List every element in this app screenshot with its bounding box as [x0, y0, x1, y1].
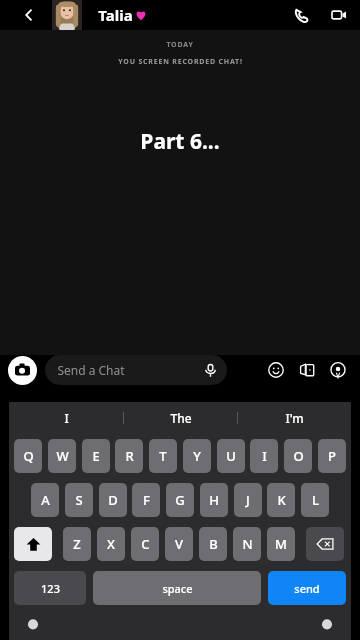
button[interactable]: P	[318, 439, 346, 473]
staticText: D	[108, 491, 118, 509]
button[interactable]: 123	[14, 571, 86, 605]
staticText: U	[226, 447, 236, 465]
button[interactable]: I	[9, 402, 123, 434]
button[interactable]: X	[97, 527, 125, 561]
staticText: K	[277, 491, 286, 509]
button[interactable]: R	[115, 439, 143, 473]
staticText: Q	[23, 447, 34, 465]
button[interactable]: Back	[18, 4, 40, 26]
button[interactable]: Shift	[14, 527, 52, 561]
staticText: Z	[73, 535, 81, 553]
button[interactable]: space	[93, 571, 261, 605]
button[interactable]: Send a Chat	[45, 355, 227, 385]
button[interactable]: Call	[288, 2, 314, 28]
staticText: I	[64, 410, 69, 426]
staticText: T	[159, 447, 167, 465]
staticText: I	[262, 447, 267, 465]
staticText: Send a Chat	[57, 362, 125, 378]
staticText: P	[328, 447, 336, 465]
button[interactable]: F	[132, 483, 160, 517]
button[interactable]: Camera	[8, 356, 37, 385]
staticText: send	[294, 581, 320, 596]
button[interactable]: send	[268, 571, 346, 605]
staticText: G	[175, 491, 185, 509]
button[interactable]: H	[200, 483, 228, 517]
staticText: B	[209, 535, 218, 553]
staticText: Part 6...	[140, 127, 220, 156]
staticText: F	[143, 491, 150, 509]
button[interactable]: G	[166, 483, 194, 517]
staticText: R	[125, 447, 134, 465]
staticText: I'm	[285, 410, 304, 426]
button[interactable]: I'm	[238, 402, 351, 434]
staticText: The	[170, 410, 192, 426]
button[interactable]: Stickers	[295, 358, 319, 382]
staticText: YOU SCREEN RECORDED CHAT!	[118, 57, 243, 67]
staticText: O	[293, 447, 304, 465]
button[interactable]: The	[124, 402, 237, 434]
staticText: W	[56, 447, 69, 465]
button[interactable]: Q	[14, 439, 42, 473]
button[interactable]: V	[165, 527, 193, 561]
staticText: E	[92, 447, 100, 465]
button[interactable]: B	[199, 527, 227, 561]
button[interactable]: Video call	[326, 2, 352, 28]
button[interactable]: Backspace	[306, 527, 344, 561]
button[interactable]: I	[250, 439, 278, 473]
button[interactable]: U	[217, 439, 245, 473]
button[interactable]: J	[234, 483, 262, 517]
button[interactable]: D	[99, 483, 127, 517]
staticText: V	[175, 535, 183, 553]
staticText: 123	[41, 581, 60, 596]
button[interactable]: T	[149, 439, 177, 473]
button[interactable]: M	[267, 527, 295, 561]
button[interactable]: W	[48, 439, 76, 473]
staticText: H	[209, 491, 219, 509]
staticText: X	[107, 535, 115, 553]
staticText: J	[246, 491, 250, 509]
staticText: TODAY	[166, 40, 194, 50]
button[interactable]: S	[65, 483, 93, 517]
button[interactable]: N	[233, 527, 261, 561]
button[interactable]: Language	[27, 615, 39, 627]
button[interactable]: Y	[183, 439, 211, 473]
button[interactable]: E	[82, 439, 110, 473]
staticText: Y	[193, 447, 201, 465]
button[interactable]: Location	[326, 358, 350, 382]
staticText: S	[75, 491, 83, 509]
staticText: C	[141, 535, 150, 553]
button[interactable]: A	[31, 483, 59, 517]
button[interactable]: L	[301, 483, 329, 517]
staticText: A	[41, 491, 50, 509]
staticText: M	[275, 535, 287, 553]
button[interactable]: Z	[63, 527, 91, 561]
button[interactable]: K	[267, 483, 295, 517]
button[interactable]: C	[131, 527, 159, 561]
staticText: N	[242, 535, 253, 553]
staticText: Talia	[98, 5, 133, 25]
button[interactable]: Voice input	[321, 615, 333, 627]
button[interactable]: Profile	[52, 0, 82, 30]
button[interactable]: Emoji	[264, 358, 288, 382]
staticText: space	[162, 581, 193, 596]
button[interactable]: O	[284, 439, 312, 473]
staticText: L	[312, 491, 319, 509]
